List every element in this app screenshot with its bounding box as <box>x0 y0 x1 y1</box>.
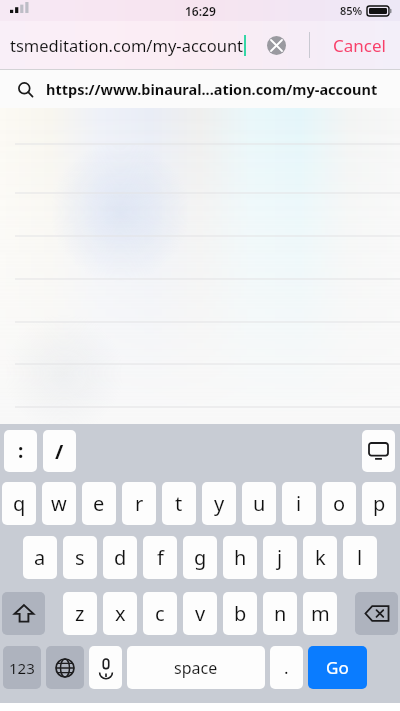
button[interactable]: q <box>2 482 36 525</box>
staticText: c <box>155 600 165 627</box>
button[interactable]: Dictate <box>89 646 122 689</box>
staticText: s <box>75 544 85 571</box>
button[interactable]: b <box>223 592 257 635</box>
button[interactable]: s <box>63 536 97 579</box>
staticText: Cancel <box>333 34 386 57</box>
staticText: w <box>51 490 67 517</box>
staticText: / <box>55 438 64 465</box>
staticText: z <box>75 600 85 627</box>
staticText: i <box>296 490 302 517</box>
staticText: k <box>315 544 326 571</box>
button[interactable]: Hide keyboard <box>362 430 395 472</box>
button[interactable]: d <box>103 536 137 579</box>
staticText: g <box>194 544 207 571</box>
staticText: q <box>13 490 26 517</box>
button[interactable]: Cancel <box>329 28 390 63</box>
button[interactable]: Clear text <box>262 31 290 59</box>
staticText: m <box>311 600 330 627</box>
button[interactable]: i <box>282 482 316 525</box>
staticText: b <box>234 600 247 627</box>
button[interactable]: c <box>143 592 177 635</box>
button[interactable]: Slash <box>43 430 76 472</box>
staticText: h <box>234 544 247 571</box>
staticText: n <box>274 600 287 627</box>
staticText: Go <box>326 656 349 679</box>
staticText: e <box>93 490 105 517</box>
button[interactable]: v <box>183 592 217 635</box>
button[interactable]: o <box>322 482 356 525</box>
staticText: o <box>333 490 346 517</box>
button[interactable]: Colon <box>4 430 37 472</box>
staticText: 123 <box>9 658 35 678</box>
staticText: r <box>135 490 144 517</box>
staticText: 16:29 <box>185 3 216 19</box>
button[interactable]: m <box>303 592 337 635</box>
button[interactable]: t <box>162 482 196 525</box>
staticText: l <box>357 544 363 571</box>
button[interactable]: x <box>103 592 137 635</box>
staticText: p <box>373 490 386 517</box>
staticText: a <box>34 544 46 571</box>
button[interactable]: Numbers <box>3 646 41 689</box>
button[interactable]: r <box>122 482 156 525</box>
staticText: space <box>174 657 218 679</box>
staticText: f <box>157 544 164 571</box>
button[interactable]: space <box>127 646 265 689</box>
button[interactable]: Go <box>308 646 367 689</box>
button[interactable]: https://www.binaural...ation.com/my-acco… <box>0 70 400 108</box>
button[interactable]: y <box>202 482 236 525</box>
button[interactable]: w <box>42 482 76 525</box>
button[interactable]: tsmeditation.com/my-account <box>0 21 400 69</box>
button[interactable]: p <box>362 482 396 525</box>
staticText: u <box>253 490 266 517</box>
button[interactable]: z <box>63 592 97 635</box>
staticText: 85% <box>340 3 363 18</box>
button[interactable]: l <box>343 536 377 579</box>
button[interactable]: u <box>242 482 276 525</box>
button[interactable]: k <box>303 536 337 579</box>
staticText: t <box>175 490 183 517</box>
staticText: . <box>284 656 289 679</box>
button[interactable]: Period <box>270 646 303 689</box>
staticText: v <box>195 600 206 627</box>
staticText: tsmeditation.com/my-account <box>10 34 244 56</box>
button[interactable]: n <box>263 592 297 635</box>
staticText: j <box>277 544 283 571</box>
button[interactable]: g <box>183 536 217 579</box>
button[interactable]: e <box>82 482 116 525</box>
button[interactable]: Shift <box>2 592 45 635</box>
staticText: d <box>114 544 127 571</box>
button[interactable]: Change keyboard <box>46 646 84 689</box>
button[interactable]: f <box>143 536 177 579</box>
staticText: https://www.binaural...ation.com/my-acco… <box>46 79 378 99</box>
staticText: y <box>214 490 225 517</box>
button[interactable]: Backspace <box>355 592 398 635</box>
button[interactable]: a <box>23 536 57 579</box>
staticText: : <box>18 438 24 464</box>
staticText: x <box>115 600 126 627</box>
button[interactable]: h <box>223 536 257 579</box>
button[interactable]: j <box>263 536 297 579</box>
